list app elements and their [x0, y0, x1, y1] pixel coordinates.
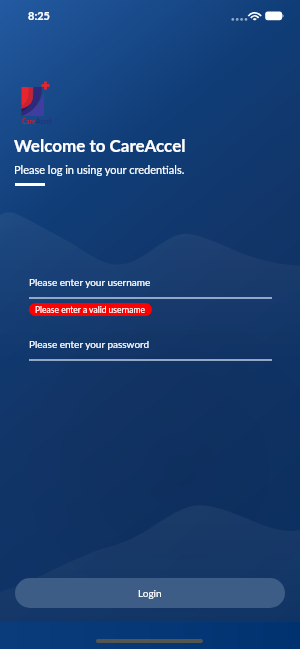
staticText: Care	[22, 118, 36, 126]
staticText: Login	[138, 587, 162, 599]
staticText: Please enter your username	[29, 276, 151, 288]
staticText: 8:25	[28, 9, 50, 22]
button[interactable]: Login	[15, 578, 285, 608]
staticText: Please enter your password	[29, 338, 150, 350]
staticText: Accel	[36, 118, 52, 126]
staticText: Please enter a valid username	[35, 305, 146, 315]
staticText: Please log in using your credentials.	[14, 163, 185, 176]
staticText: Welcome to CareAccel	[14, 135, 186, 155]
